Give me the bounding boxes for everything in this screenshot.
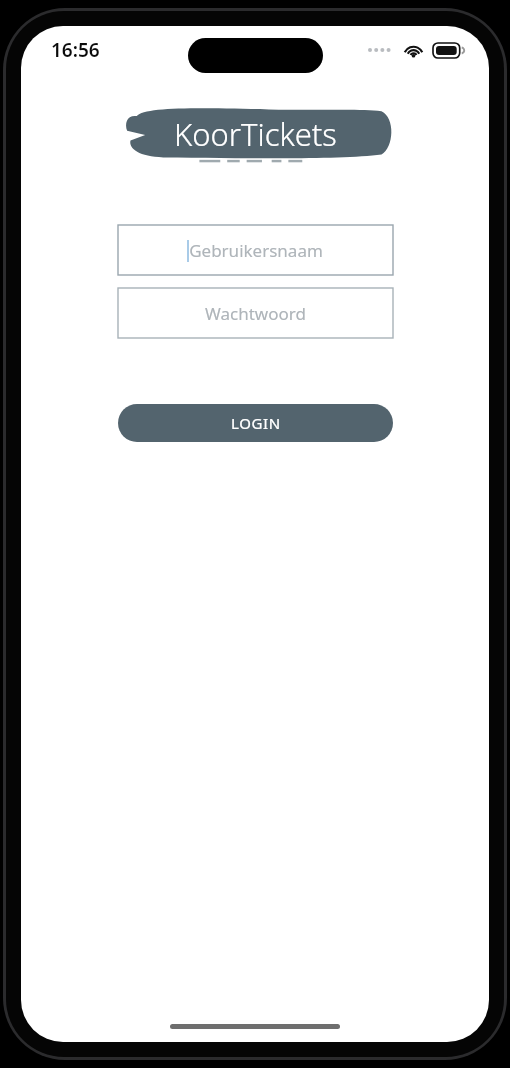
staticText: LOGIN: [231, 413, 281, 433]
button[interactable]: Gebruikersnaam: [118, 225, 393, 275]
staticText: KoorTickets: [174, 113, 337, 155]
staticText: Gebruikersnaam: [189, 239, 323, 262]
staticText: 16:56: [51, 37, 100, 63]
button[interactable]: LOGIN: [118, 404, 393, 442]
staticText: Wachtwoord: [205, 302, 306, 325]
button[interactable]: Wachtwoord: [118, 288, 393, 338]
